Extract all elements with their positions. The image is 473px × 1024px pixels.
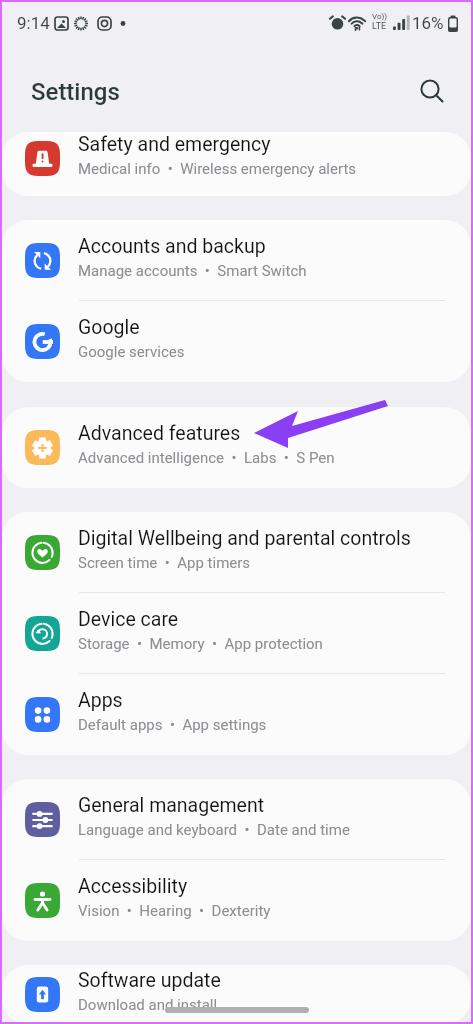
staticText: Advanced intelligence • Labs • S Pen: [78, 449, 335, 467]
staticText: Settings: [31, 78, 120, 106]
staticText: Medical info • Wireless emergency alerts: [78, 160, 357, 178]
staticText: Accessibility: [78, 875, 188, 898]
button[interactable]: Accessibility: [2, 860, 471, 941]
staticText: Manage accounts • Smart Switch: [78, 262, 307, 280]
button[interactable]: Software update: [2, 965, 471, 1024]
staticText: Advanced features: [78, 422, 241, 445]
staticText: LTE: [372, 21, 387, 32]
button[interactable]: Apps: [2, 674, 471, 755]
button[interactable]: Accounts and backup: [2, 220, 471, 301]
staticText: Accounts and backup: [78, 235, 266, 258]
button[interactable]: Safety and emergency: [2, 132, 471, 196]
staticText: Safety and emergency: [78, 133, 271, 156]
button[interactable]: Search: [411, 70, 453, 112]
button[interactable]: Google: [2, 301, 471, 382]
staticText: Software update: [78, 969, 221, 992]
staticText: Screen time • App timers: [78, 554, 251, 572]
staticText: Vision • Hearing • Dexterity: [78, 902, 271, 920]
staticText: Default apps • App settings: [78, 716, 267, 734]
staticText: Vo)): [372, 12, 388, 21]
staticText: General management: [78, 794, 265, 817]
staticText: Language and keyboard • Date and time: [78, 821, 350, 839]
staticText: Download and install: [78, 996, 218, 1014]
staticText: Google services: [78, 343, 185, 361]
staticText: Digital Wellbeing and parental controls: [78, 527, 411, 550]
staticText: Device care: [78, 608, 179, 631]
button[interactable]: Digital Wellbeing and parental controls: [2, 512, 471, 593]
staticText: Storage • Memory • App protection: [78, 635, 323, 653]
staticText: 16%: [412, 13, 444, 33]
button[interactable]: Device care: [2, 593, 471, 674]
staticText: 9:14: [17, 13, 50, 33]
staticText: Google: [78, 316, 140, 339]
button[interactable]: General management: [2, 779, 471, 860]
button[interactable]: Advanced features: [2, 407, 471, 488]
staticText: Apps: [78, 689, 123, 712]
